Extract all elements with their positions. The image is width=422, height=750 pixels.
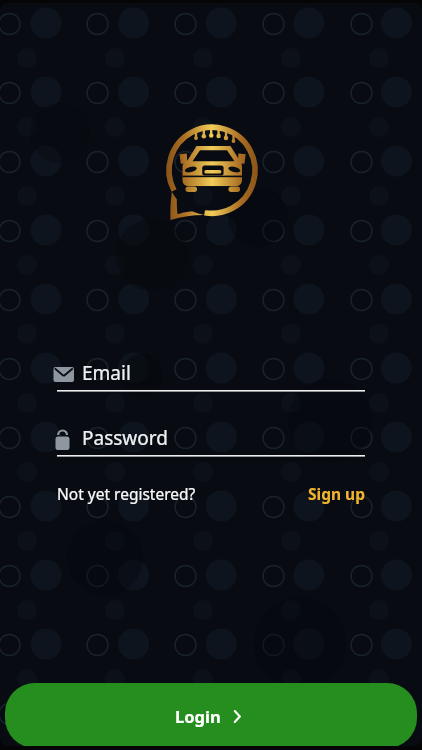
button[interactable]: Login — [5, 683, 417, 746]
staticText: Sign up — [308, 483, 365, 504]
button[interactable]: Password — [50, 421, 370, 457]
staticText: Not yet registered? — [57, 483, 196, 504]
staticText: Email — [82, 360, 131, 386]
button[interactable]: Email — [50, 356, 370, 392]
staticText: Password — [82, 425, 168, 451]
staticText: Login — [175, 705, 221, 727]
button[interactable]: Sign up — [303, 478, 370, 509]
